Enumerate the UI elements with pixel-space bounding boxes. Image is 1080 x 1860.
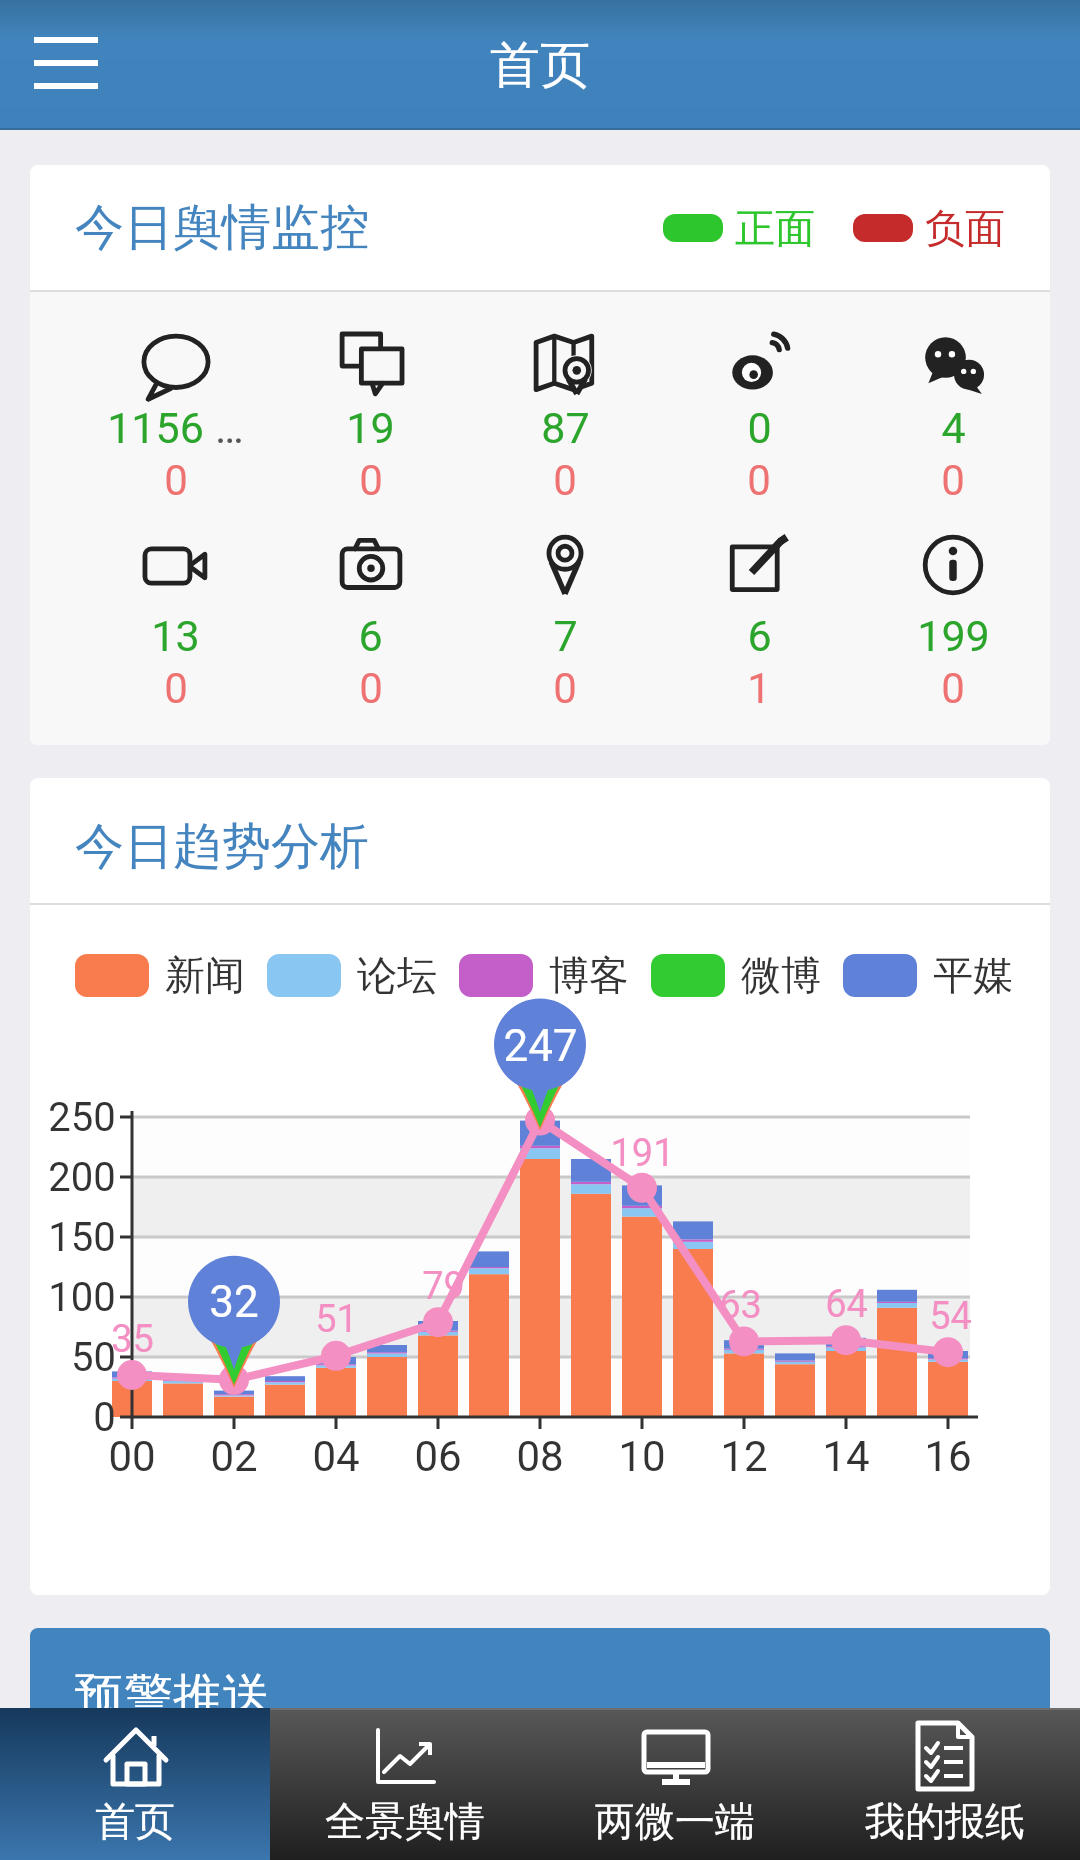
button[interactable]: 4 — [856, 292, 1050, 518]
staticText: 06 — [414, 1432, 462, 1481]
staticText: 250 — [48, 1094, 116, 1141]
staticText: 14 — [822, 1432, 870, 1481]
staticText: 0 — [553, 456, 577, 505]
button[interactable]: 19 — [273, 292, 468, 518]
staticText: 0 — [164, 456, 188, 505]
staticText: 7 — [553, 611, 578, 661]
staticText: 19 — [346, 403, 395, 453]
staticText: 50 — [71, 1334, 116, 1381]
staticText: 247 — [503, 1020, 578, 1072]
staticText: 0 — [941, 456, 965, 505]
staticText: 0 — [164, 664, 188, 713]
staticText: 正面 — [735, 203, 815, 253]
staticText: 04 — [312, 1432, 360, 1481]
staticText: 博客 — [549, 950, 629, 1000]
staticText: 0 — [941, 664, 965, 713]
staticText: 0 — [747, 456, 771, 505]
button[interactable]: 87 — [468, 292, 662, 518]
staticText: 150 — [48, 1214, 116, 1261]
staticText: 12 — [720, 1432, 768, 1481]
staticText: 100 — [48, 1274, 116, 1321]
staticText: 87 — [541, 403, 590, 453]
staticText: 预警推送 — [75, 1666, 271, 1728]
staticText: 02 — [210, 1432, 258, 1481]
button[interactable]: 13 — [78, 518, 273, 744]
staticText: 54 — [929, 1294, 972, 1338]
staticText: 13 — [151, 611, 200, 661]
button[interactable]: 199 — [856, 518, 1050, 744]
staticText: 64 — [825, 1282, 868, 1326]
staticText: 199 — [917, 611, 990, 661]
staticText: 08 — [516, 1432, 564, 1481]
staticText: 191 — [610, 1131, 675, 1175]
staticText: 平媒 — [933, 950, 1013, 1000]
button[interactable]: 6 — [662, 518, 856, 744]
staticText: 首页 — [490, 34, 590, 97]
staticText: 全景舆情 — [325, 1796, 485, 1846]
staticText: 我的报纸 — [865, 1796, 1025, 1846]
staticText: 新闻 — [165, 950, 245, 1000]
staticText: … — [204, 403, 244, 453]
staticText: 4 — [941, 403, 966, 453]
button[interactable]: 全景舆情 — [270, 1708, 540, 1860]
staticText: 16 — [924, 1432, 972, 1481]
staticText: 负面 — [925, 203, 1005, 253]
button[interactable]: 首页 — [0, 1708, 270, 1860]
staticText: 0 — [553, 664, 577, 713]
staticText: 首页 — [95, 1796, 175, 1846]
staticText: 0 — [747, 403, 772, 453]
staticText: 1156 — [107, 403, 204, 453]
staticText: 6 — [358, 611, 383, 661]
staticText: 32 — [209, 1276, 259, 1328]
staticText: 微博 — [741, 950, 821, 1000]
staticText: 0 — [93, 1394, 116, 1441]
button[interactable]: 1156 — [78, 292, 273, 518]
button[interactable]: 0 — [662, 292, 856, 518]
staticText: 论坛 — [357, 950, 437, 1000]
staticText: 两微一端 — [595, 1796, 755, 1846]
staticText: 今日舆情监控 — [75, 197, 369, 259]
staticText: 51 — [315, 1297, 358, 1341]
button[interactable]: 两微一端 — [540, 1708, 810, 1860]
staticText: 35 — [111, 1317, 154, 1361]
staticText: 6 — [747, 611, 772, 661]
button[interactable]: 7 — [468, 518, 662, 744]
staticText: 63 — [719, 1283, 762, 1327]
staticText: 0 — [359, 456, 383, 505]
button[interactable]: 6 — [273, 518, 468, 744]
button[interactable]: 我的报纸 — [810, 1708, 1080, 1860]
staticText: 1 — [747, 664, 771, 713]
staticText: 今日趋势分析 — [75, 816, 369, 878]
staticText: 79 — [422, 1264, 465, 1308]
button[interactable] — [34, 36, 98, 92]
staticText: 10 — [618, 1432, 666, 1481]
staticText: 00 — [108, 1432, 156, 1481]
staticText: 200 — [48, 1154, 116, 1201]
staticText: 0 — [359, 664, 383, 713]
